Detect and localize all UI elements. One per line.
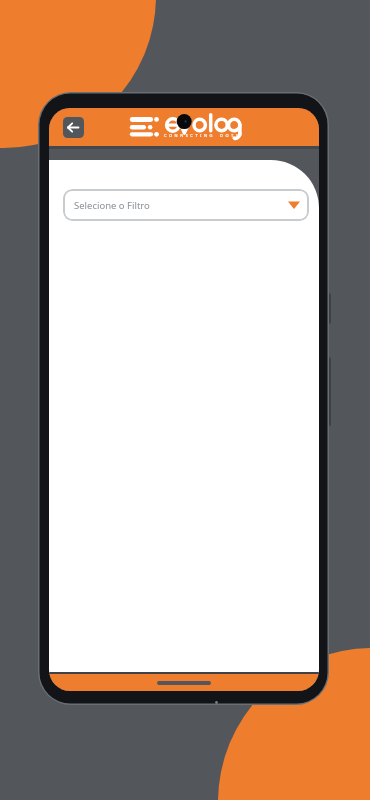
staticText: Selecione o Filtro bbox=[74, 199, 150, 212]
staticText: C O N N E C T I N G D O T S bbox=[164, 133, 239, 138]
button[interactable]: Selecione o Filtro bbox=[63, 189, 309, 221]
button[interactable] bbox=[63, 117, 84, 138]
